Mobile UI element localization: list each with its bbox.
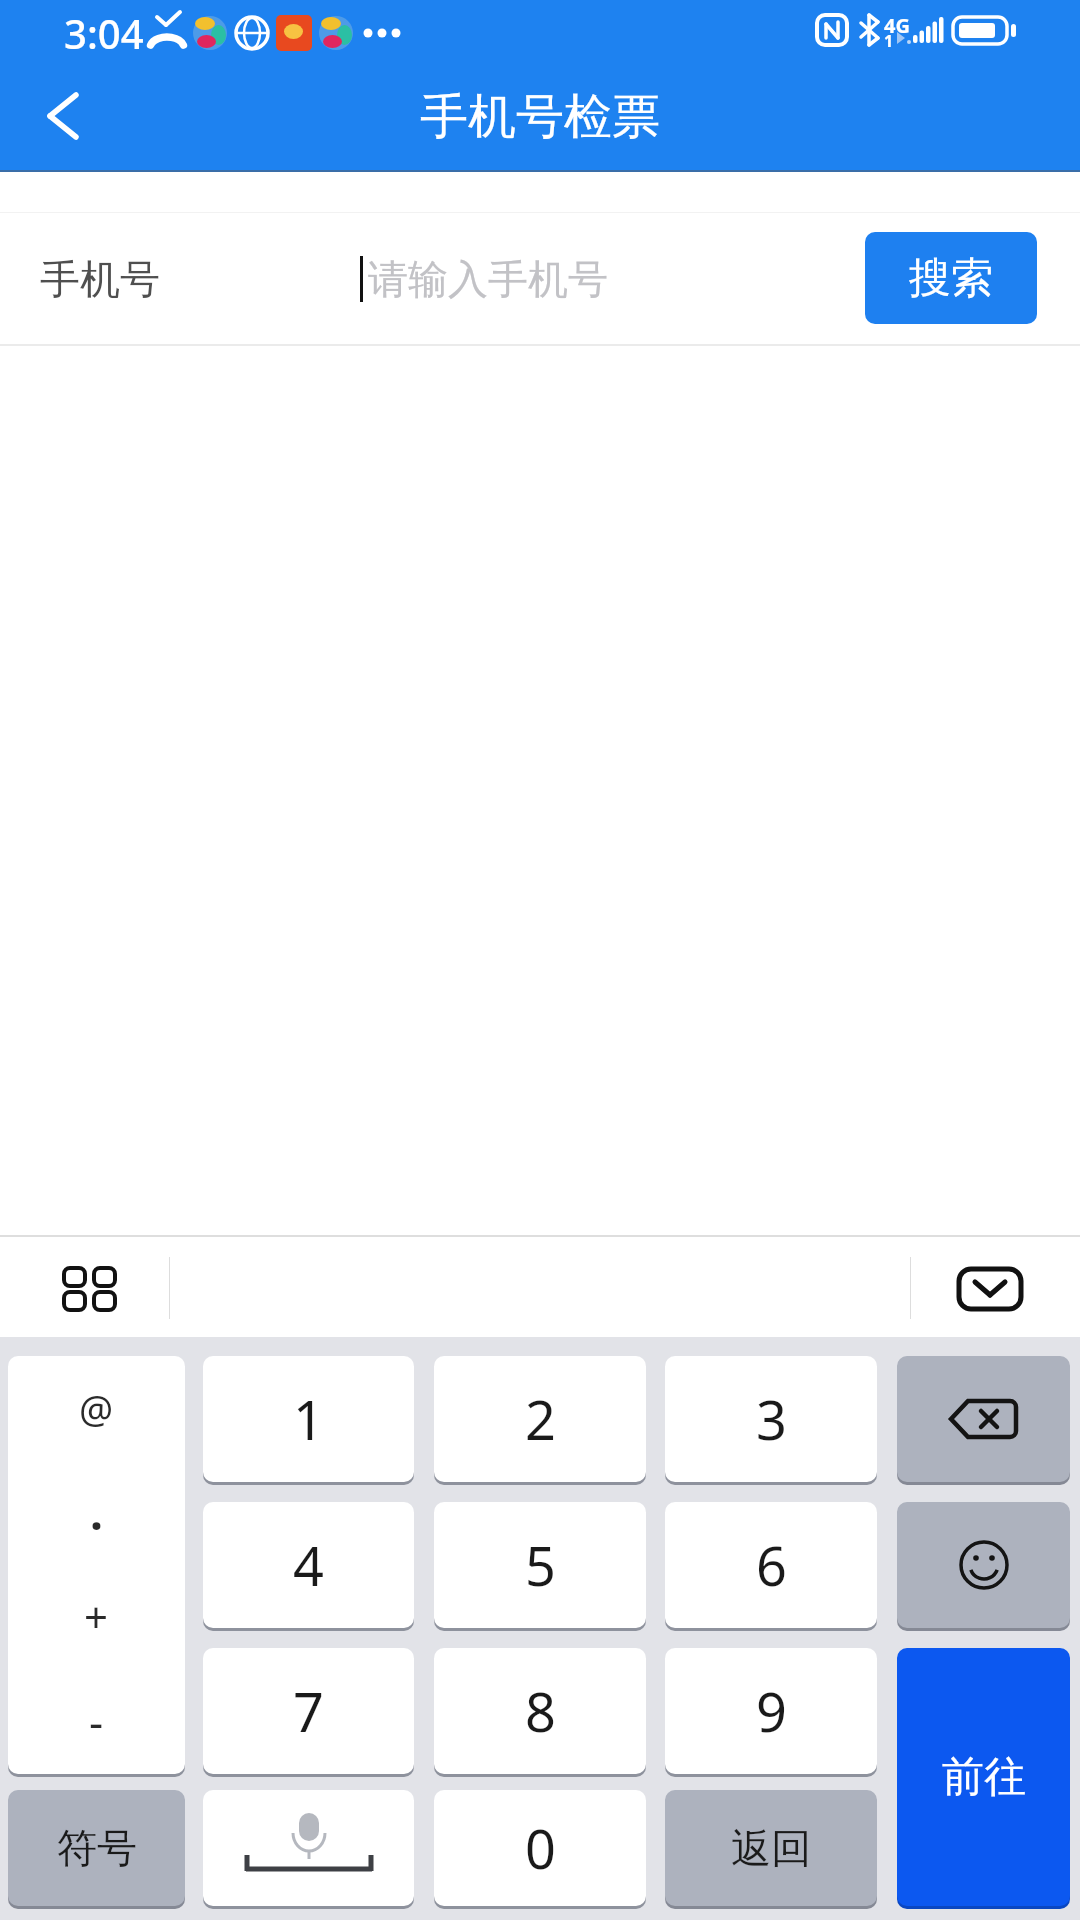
staticText: 6 [756, 1528, 787, 1602]
button[interactable] [30, 1250, 150, 1328]
staticText: + [84, 1588, 109, 1645]
staticText: 手机号检票 [420, 87, 660, 147]
button[interactable] [8, 1356, 185, 1774]
button[interactable]: 9 [665, 1648, 877, 1774]
button[interactable]: 5 [434, 1502, 646, 1628]
button[interactable]: 符号 [8, 1790, 185, 1906]
staticText: 1 [884, 30, 894, 48]
staticText: 3 [756, 1382, 787, 1456]
staticText: 4 [293, 1528, 324, 1602]
button[interactable]: 1 [203, 1356, 414, 1482]
button[interactable] [20, 80, 130, 156]
staticText: 7 [293, 1674, 324, 1748]
button[interactable]: 7 [203, 1648, 414, 1774]
button[interactable]: 3 [665, 1356, 877, 1482]
staticText: 手机号 [40, 254, 160, 304]
staticText: 请输入手机号 [368, 254, 608, 304]
button[interactable]: 返回 [665, 1790, 877, 1906]
button[interactable] [930, 1250, 1050, 1328]
staticText: 2 [525, 1382, 556, 1456]
button[interactable] [203, 1790, 414, 1906]
button[interactable]: 前往 [897, 1648, 1070, 1906]
staticText: 前往 [942, 1751, 1026, 1804]
staticText: . [90, 1481, 103, 1544]
staticText: 3:04 [64, 6, 144, 58]
staticText: 0 [525, 1811, 556, 1885]
button[interactable]: 请输入手机号 [350, 212, 850, 345]
staticText: 符号 [57, 1823, 137, 1873]
staticText: 1 [293, 1382, 324, 1456]
staticText: 8 [525, 1674, 556, 1748]
staticText: 4G [884, 12, 910, 36]
staticText: @ [79, 1382, 114, 1434]
staticText: 搜索 [909, 252, 993, 305]
button[interactable]: 0 [434, 1790, 646, 1906]
staticText: 返回 [731, 1823, 811, 1873]
button[interactable]: 6 [665, 1502, 877, 1628]
button[interactable]: 8 [434, 1648, 646, 1774]
button[interactable]: 4 [203, 1502, 414, 1628]
button[interactable] [897, 1356, 1070, 1482]
staticText: 9 [756, 1674, 787, 1748]
staticText: - [89, 1691, 104, 1751]
button[interactable]: 搜索 [865, 232, 1037, 324]
button[interactable]: 2 [434, 1356, 646, 1482]
button[interactable] [897, 1502, 1070, 1628]
staticText: 5 [525, 1528, 556, 1602]
